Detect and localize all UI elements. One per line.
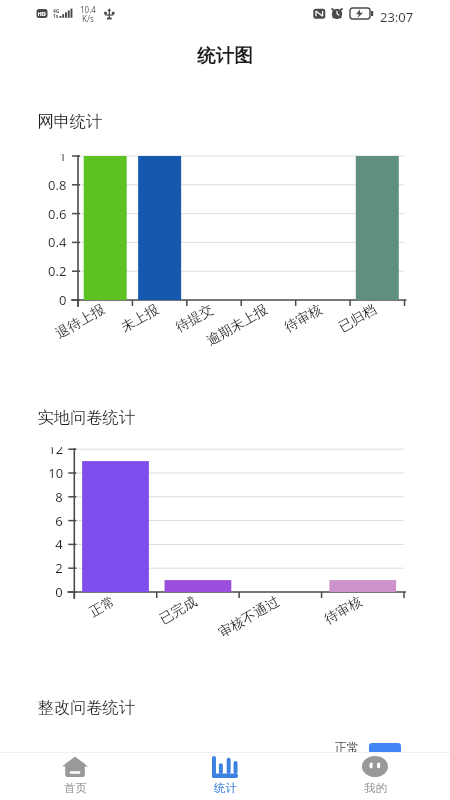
- other: 统计: [212, 756, 238, 778]
- other: 我的: [362, 756, 388, 778]
- staticText: 统计: [214, 781, 237, 795]
- button[interactable]: 统计: [150, 753, 300, 800]
- button[interactable]: 我的: [300, 753, 450, 800]
- other: 首页: [62, 756, 88, 778]
- staticText: 统计图: [197, 44, 253, 67]
- staticText: 首页: [64, 781, 87, 795]
- button[interactable]: 首页: [0, 753, 150, 800]
- staticText: 我的: [364, 781, 387, 795]
